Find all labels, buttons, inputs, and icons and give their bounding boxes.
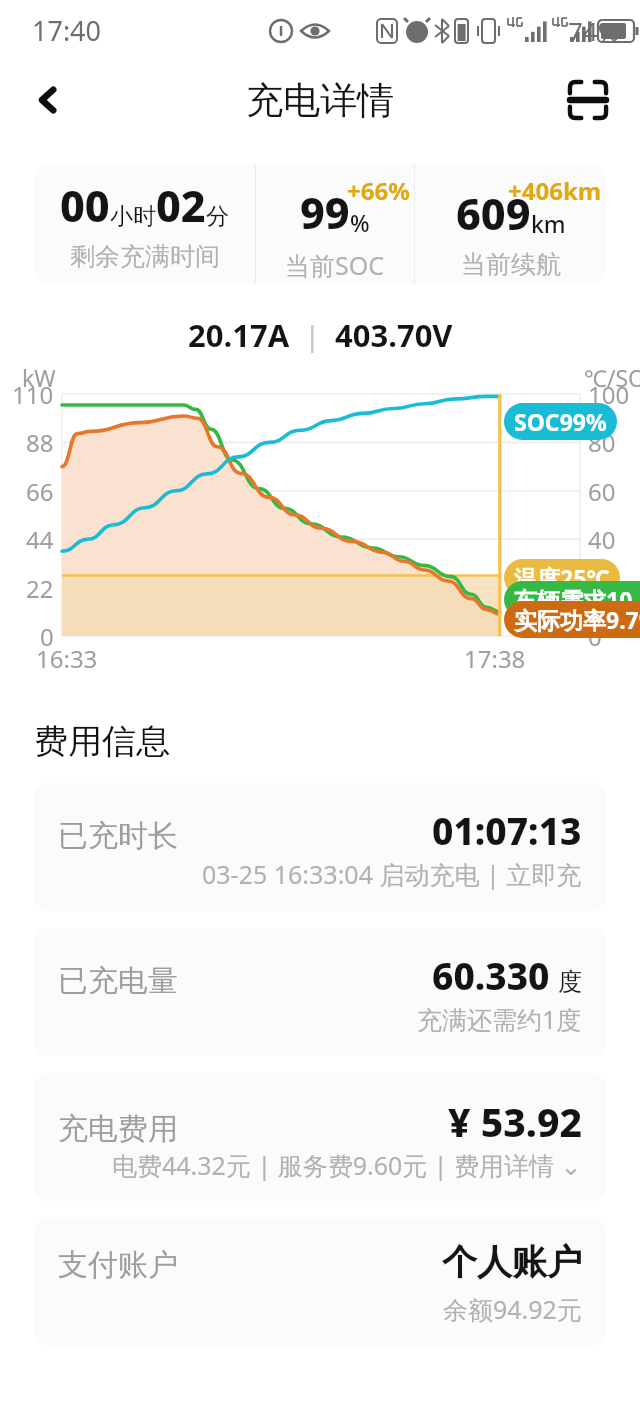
staticText: 充满还需约1度	[417, 1002, 582, 1036]
staticText: km	[531, 208, 566, 239]
staticText: 电费44.32元 | 服务费9.60元 | 费用详情 ⌄	[112, 1148, 582, 1182]
staticText: 40	[588, 523, 616, 556]
staticText: 22	[26, 572, 54, 605]
staticText: 20.17A	[188, 314, 290, 356]
staticText: 充电详情	[246, 77, 394, 124]
staticText: 20	[588, 572, 616, 605]
staticText: 74%	[568, 13, 620, 48]
button[interactable]: 已充电量	[34, 928, 606, 1056]
staticText: 00	[60, 176, 110, 235]
staticText: ℃/SOC	[584, 362, 640, 393]
staticText: 609	[456, 184, 531, 243]
staticText: 88	[26, 426, 54, 459]
staticText: 44	[26, 523, 54, 556]
staticText: 车辆需求10.41kW	[514, 584, 640, 615]
button[interactable]: 充电费用	[34, 1073, 606, 1201]
staticText: 01:07:13	[432, 805, 582, 855]
staticText: 个人账户	[442, 1240, 582, 1284]
staticText: 当前SOC	[285, 248, 385, 282]
staticText: 实际功率9.79kW	[514, 604, 640, 635]
staticText: 费用信息	[34, 720, 170, 763]
staticText: 已充电量	[58, 962, 178, 1000]
staticText: |	[290, 316, 335, 354]
staticText: kW	[22, 362, 56, 393]
staticText: 17:38	[464, 642, 526, 675]
staticText: 60	[588, 475, 616, 508]
staticText: 剩余充满时间	[70, 241, 220, 272]
button[interactable]: 返回	[16, 68, 80, 132]
staticText: 403.70V	[335, 314, 453, 356]
staticText: 当前续航	[461, 249, 561, 280]
staticText: 小时	[110, 202, 156, 231]
staticText: +66%	[347, 174, 410, 207]
staticText: 60.330	[432, 950, 550, 1000]
staticText: 110	[12, 378, 54, 411]
staticText: 度	[558, 967, 582, 997]
staticText: ¥ 53.92	[448, 1095, 582, 1148]
staticText: 充电费用	[58, 1110, 178, 1148]
staticText: 80	[588, 426, 616, 459]
button[interactable]: 扫一扫	[556, 68, 620, 132]
staticText: 0	[40, 620, 54, 653]
staticText: +406km	[508, 174, 602, 207]
button[interactable]: 已充时长	[34, 783, 606, 911]
staticText: 已充时长	[58, 817, 178, 855]
button[interactable]: 支付账户	[34, 1218, 606, 1346]
staticText: 温度25℃	[514, 562, 610, 593]
staticText: 分	[206, 202, 229, 231]
staticText: 余额94.92元	[443, 1292, 582, 1326]
staticText: 17:40	[32, 12, 102, 49]
staticText: 100	[588, 378, 630, 411]
staticText: 支付账户	[58, 1246, 178, 1284]
staticText: 66	[26, 475, 54, 508]
staticText: %	[350, 207, 370, 238]
staticText: 16:33	[36, 642, 98, 675]
staticText: SOC99%	[514, 406, 607, 437]
staticText: 02	[156, 176, 206, 235]
staticText: 03-25 16:33:04 启动充电 | 立即充	[202, 857, 582, 891]
staticText: 0	[588, 620, 602, 653]
button[interactable]: 00	[34, 164, 606, 284]
staticText: 99	[300, 183, 350, 242]
